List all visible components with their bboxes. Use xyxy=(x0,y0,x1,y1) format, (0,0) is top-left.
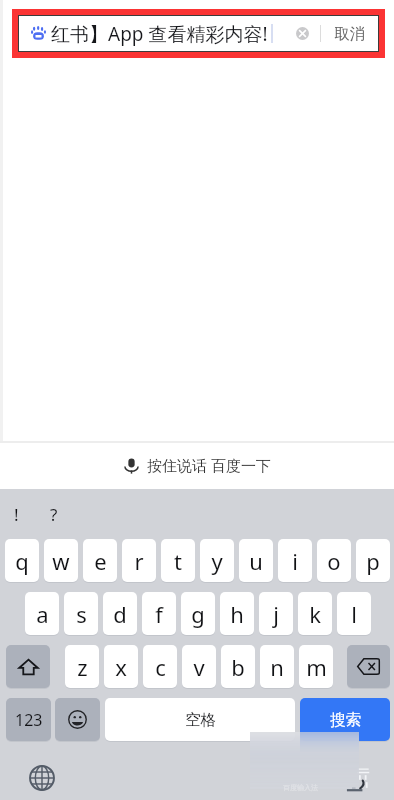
button[interactable]: w xyxy=(44,539,78,582)
button[interactable]: l xyxy=(337,592,371,635)
button[interactable]: 取消 xyxy=(321,15,378,52)
staticText: 按住说话 百度一下 xyxy=(147,455,271,475)
button[interactable]: x xyxy=(104,645,138,688)
button[interactable]: g xyxy=(181,592,215,635)
staticText: y xyxy=(211,546,223,576)
button[interactable]: Search xyxy=(300,698,390,741)
button[interactable]: Switch keyboard language xyxy=(29,765,55,791)
button[interactable]: p xyxy=(356,539,390,582)
button[interactable]: Hide keyboard xyxy=(347,764,367,792)
staticText: j xyxy=(273,599,279,629)
staticText: x xyxy=(115,652,127,682)
button[interactable]: 按住说话 百度一下 xyxy=(0,441,394,489)
button[interactable]: a xyxy=(25,592,59,635)
staticText: c xyxy=(155,652,166,682)
staticText: t xyxy=(174,546,182,576)
button[interactable]: o xyxy=(317,539,351,582)
button[interactable]: c xyxy=(143,645,177,688)
button[interactable]: z xyxy=(65,645,99,688)
button[interactable]: 红书】App 查看精彩内容! xyxy=(18,15,379,52)
button[interactable]: s xyxy=(64,592,98,635)
staticText: b xyxy=(231,652,245,682)
button[interactable]: h xyxy=(220,592,254,635)
button[interactable]: t xyxy=(161,539,195,582)
staticText: l xyxy=(351,599,357,629)
button[interactable]: i xyxy=(278,539,312,582)
staticText: s xyxy=(76,599,87,629)
staticText: f xyxy=(155,599,163,629)
button[interactable]: f xyxy=(142,592,176,635)
button[interactable]: b xyxy=(221,645,255,688)
staticText: 取消 xyxy=(334,24,365,44)
button[interactable]: m xyxy=(299,645,333,688)
staticText: e xyxy=(94,546,107,576)
staticText: 红书】App 查看精彩内容! xyxy=(51,21,268,47)
staticText: o xyxy=(327,546,341,576)
button[interactable]: Shift xyxy=(6,645,50,688)
staticText: k xyxy=(309,599,321,629)
button[interactable]: Emoji xyxy=(55,698,100,741)
staticText: r xyxy=(134,546,144,576)
staticText: q xyxy=(15,546,29,576)
button[interactable]: Backspace xyxy=(347,645,390,688)
staticText: g xyxy=(191,599,205,629)
staticText: p xyxy=(366,546,380,576)
staticText: 123 xyxy=(15,709,43,731)
staticText: a xyxy=(36,599,49,629)
staticText: ! xyxy=(14,503,19,526)
button[interactable]: j xyxy=(259,592,293,635)
button[interactable]: u xyxy=(239,539,273,582)
staticText: h xyxy=(230,599,244,629)
staticText: w xyxy=(52,546,70,576)
button[interactable]: r xyxy=(122,539,156,582)
button[interactable]: d xyxy=(103,592,137,635)
button[interactable]: n xyxy=(260,645,294,688)
staticText: d xyxy=(113,599,127,629)
staticText: 百度输入法 xyxy=(283,783,318,792)
staticText: z xyxy=(77,652,88,682)
staticText: 空格 xyxy=(185,710,216,730)
button[interactable]: y xyxy=(200,539,234,582)
staticText: 搜索 xyxy=(330,710,361,730)
staticText: m xyxy=(306,652,327,682)
button[interactable]: q xyxy=(5,539,39,582)
staticText: v xyxy=(193,652,205,682)
staticText: n xyxy=(270,652,284,682)
button[interactable]: e xyxy=(83,539,117,582)
staticText: ? xyxy=(50,503,58,526)
button[interactable]: v xyxy=(182,645,216,688)
button[interactable]: Space xyxy=(105,698,295,741)
button[interactable]: Clear text xyxy=(288,15,316,52)
button[interactable]: k xyxy=(298,592,332,635)
staticText: u xyxy=(249,546,263,576)
button[interactable]: Numbers xyxy=(6,698,51,741)
staticText: i xyxy=(292,546,298,576)
